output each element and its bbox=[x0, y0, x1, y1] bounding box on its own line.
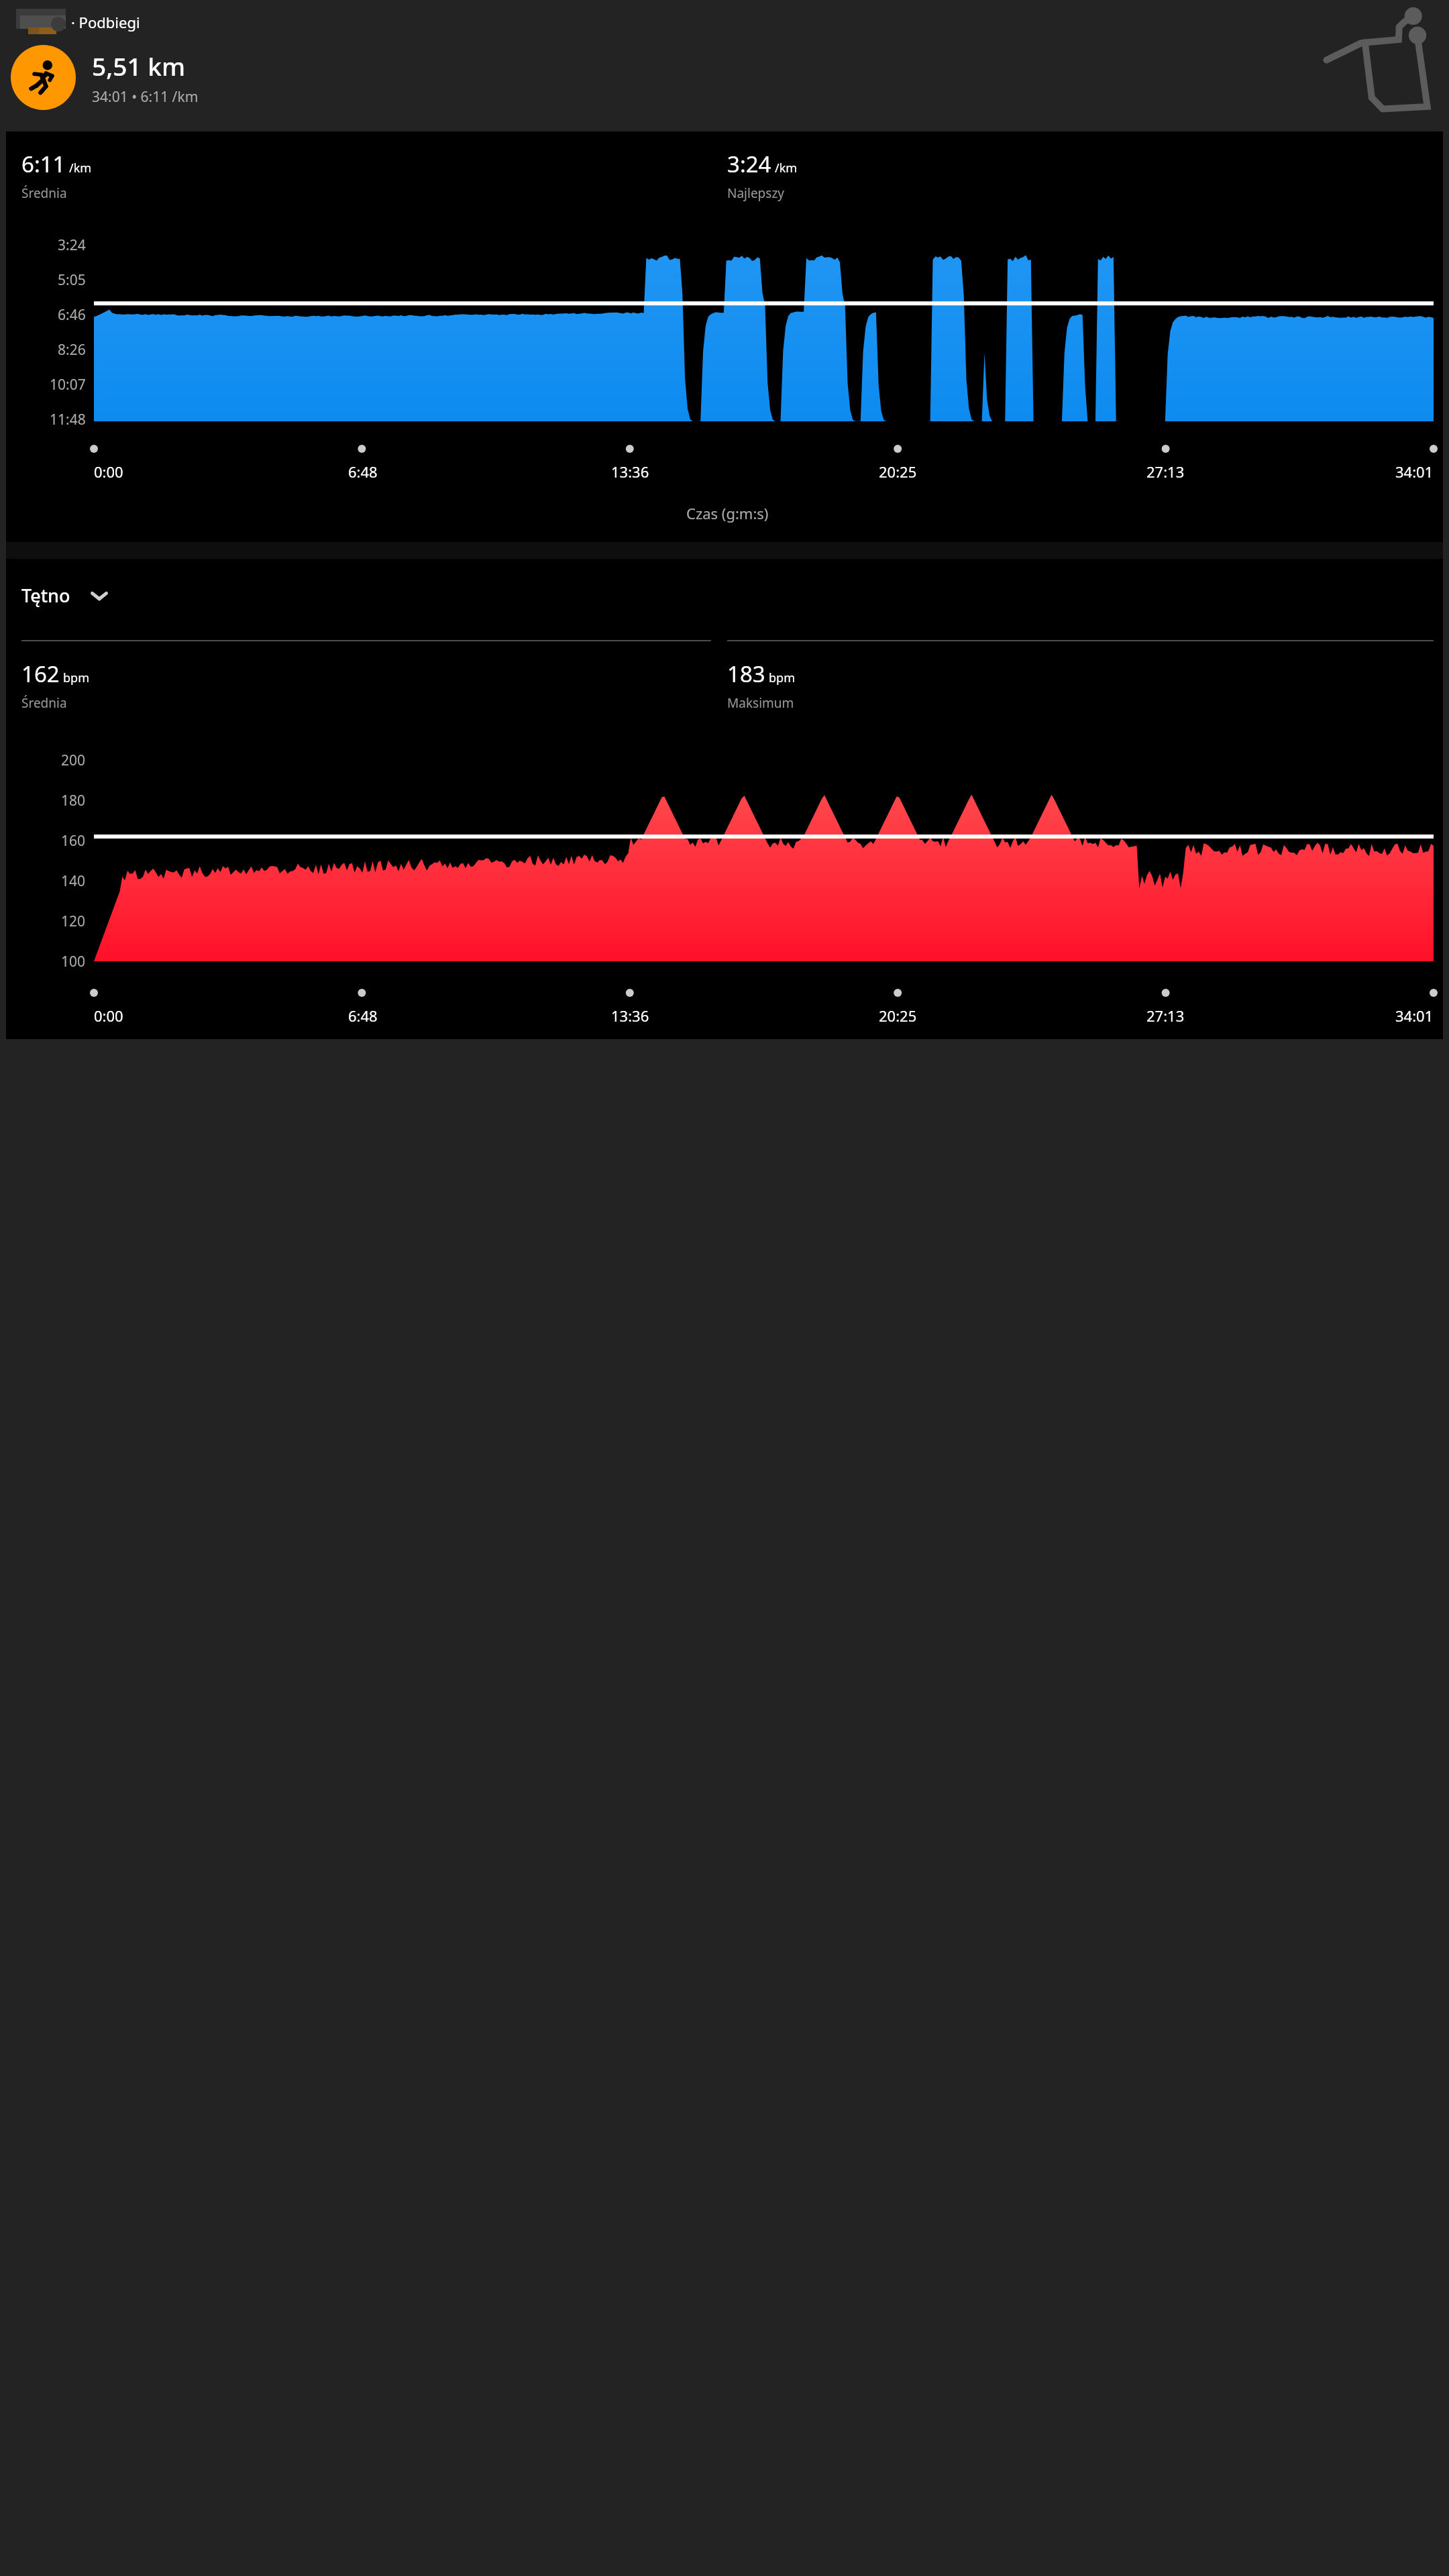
staticText: 0:00 bbox=[94, 1006, 123, 1026]
staticText: 6:11 bbox=[21, 149, 66, 179]
staticText: 5:05 bbox=[58, 270, 86, 290]
staticText: Tętno bbox=[21, 583, 70, 608]
staticText: 100 bbox=[61, 952, 86, 971]
staticText: 6:48 bbox=[348, 462, 378, 482]
staticText: 11:48 bbox=[50, 410, 86, 429]
other: Expand bbox=[89, 586, 109, 606]
staticText: /km bbox=[69, 160, 92, 176]
staticText: bpm bbox=[63, 669, 89, 686]
staticText: 3:24 bbox=[727, 149, 771, 179]
staticText: 34:01 bbox=[1395, 1006, 1434, 1026]
staticText: 34:01 bbox=[1395, 462, 1434, 482]
staticText: 13:36 bbox=[611, 462, 649, 482]
staticText: Średnia bbox=[21, 184, 67, 202]
button[interactable]: 5,51 km bbox=[11, 45, 1449, 110]
staticText: /km bbox=[775, 160, 798, 176]
staticText: 27:13 bbox=[1146, 462, 1185, 482]
staticText: 160 bbox=[61, 831, 86, 851]
staticText: Średnia bbox=[21, 694, 67, 712]
staticText: 162 bbox=[21, 659, 60, 689]
staticText: 27:13 bbox=[1146, 1006, 1185, 1026]
staticText: 180 bbox=[61, 791, 86, 810]
staticText: 6:46 bbox=[58, 305, 86, 325]
staticText: 5,51 km bbox=[92, 49, 185, 83]
staticText: 200 bbox=[61, 751, 86, 770]
staticText: 140 bbox=[61, 871, 86, 891]
staticText: bpm bbox=[769, 669, 795, 686]
staticText: · Podbiegi bbox=[71, 12, 140, 32]
staticText: 183 bbox=[727, 659, 765, 689]
staticText: 13:36 bbox=[611, 1006, 649, 1026]
staticText: Maksimum bbox=[727, 694, 794, 712]
staticText: 20:25 bbox=[879, 1006, 917, 1026]
staticText: 10:07 bbox=[50, 375, 86, 394]
staticText: Czas (g:m:s) bbox=[686, 503, 769, 523]
button[interactable]: Tętno bbox=[21, 583, 109, 608]
staticText: 34:01 • 6:11 /km bbox=[92, 87, 199, 107]
button[interactable]: Route map bbox=[1323, 3, 1445, 124]
staticText: Najlepszy bbox=[727, 184, 785, 202]
staticText: 6:48 bbox=[348, 1006, 378, 1026]
staticText: 3:24 bbox=[58, 235, 86, 255]
staticText: 20:25 bbox=[879, 462, 917, 482]
staticText: 0:00 bbox=[94, 462, 123, 482]
staticText: 8:26 bbox=[58, 340, 86, 360]
staticText: 120 bbox=[61, 912, 86, 931]
